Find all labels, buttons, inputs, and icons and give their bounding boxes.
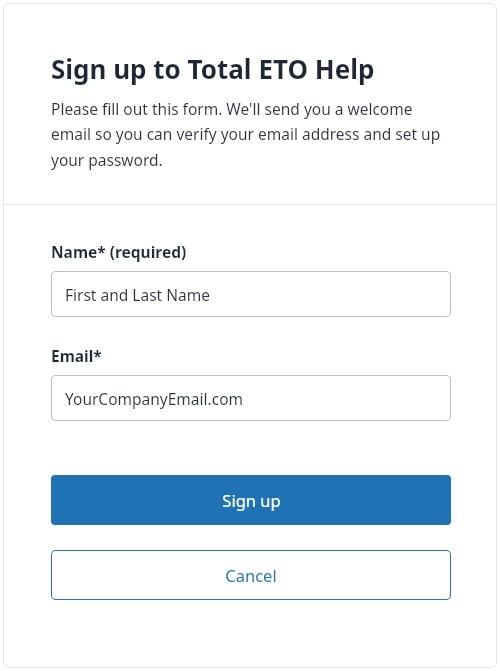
button[interactable]: First and Last Name	[51, 271, 451, 317]
button[interactable]: Sign up	[51, 475, 451, 525]
staticText: Sign up	[222, 489, 281, 511]
staticText: YourCompanyEmail.com	[65, 388, 244, 409]
button[interactable]: YourCompanyEmail.com	[51, 375, 451, 421]
staticText: First and Last Name	[65, 284, 210, 305]
button[interactable]: Cancel	[51, 550, 451, 600]
staticText: Sign up to Total ETO Help	[51, 51, 375, 86]
staticText: Name* (required)	[51, 241, 187, 262]
staticText: Email*	[51, 345, 102, 366]
staticText: Cancel	[225, 564, 277, 586]
staticText: Please fill out this form. We'll send yo…	[51, 98, 451, 171]
